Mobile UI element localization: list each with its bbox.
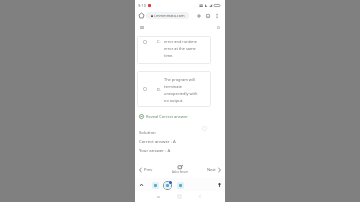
staticText: Solution (139, 129, 156, 135)
staticText: C. (157, 39, 161, 44)
button[interactable]: New tab (194, 11, 203, 20)
button[interactable]: Prev (138, 165, 154, 174)
button[interactable]: Settings (215, 181, 223, 189)
staticText: Your answer : A (139, 147, 171, 153)
staticText: 9:10 (138, 3, 146, 8)
button[interactable]: Translate (162, 180, 172, 190)
button[interactable]: Menu (138, 23, 146, 31)
button[interactable]: Emoji (175, 180, 185, 190)
staticText: Reveal Correct answer (146, 114, 188, 119)
staticText: error and runtime error at the same time… (164, 39, 199, 58)
button[interactable]: i.mmmmata.com (146, 12, 189, 19)
button[interactable]: Home (137, 11, 146, 20)
button[interactable]: Home (173, 191, 185, 202)
staticText: D. (157, 87, 161, 92)
button[interactable]: More options (212, 11, 221, 20)
staticText: i.mmmmata.com (154, 13, 185, 18)
button[interactable]: Back (194, 191, 206, 202)
button[interactable]: Ask a forum (171, 165, 189, 174)
button[interactable]: D. (137, 71, 211, 107)
button[interactable]: C. (137, 36, 211, 64)
staticText: Prev (144, 167, 153, 172)
button[interactable]: Expand toolbar (137, 181, 145, 189)
button[interactable]: Notifications (214, 23, 222, 31)
button[interactable]: Tabs (203, 11, 212, 20)
button[interactable]: Reveal Correct answer (138, 112, 189, 120)
button[interactable]: Recents (152, 191, 164, 202)
staticText: Correct answer : A (139, 138, 176, 144)
button[interactable]: Clipboard (150, 180, 160, 190)
button[interactable]: Next (206, 165, 222, 174)
staticText: Ask a forum (172, 170, 188, 174)
staticText: Next (207, 167, 216, 172)
staticText: The program will terminate unexpectedly … (164, 77, 203, 103)
